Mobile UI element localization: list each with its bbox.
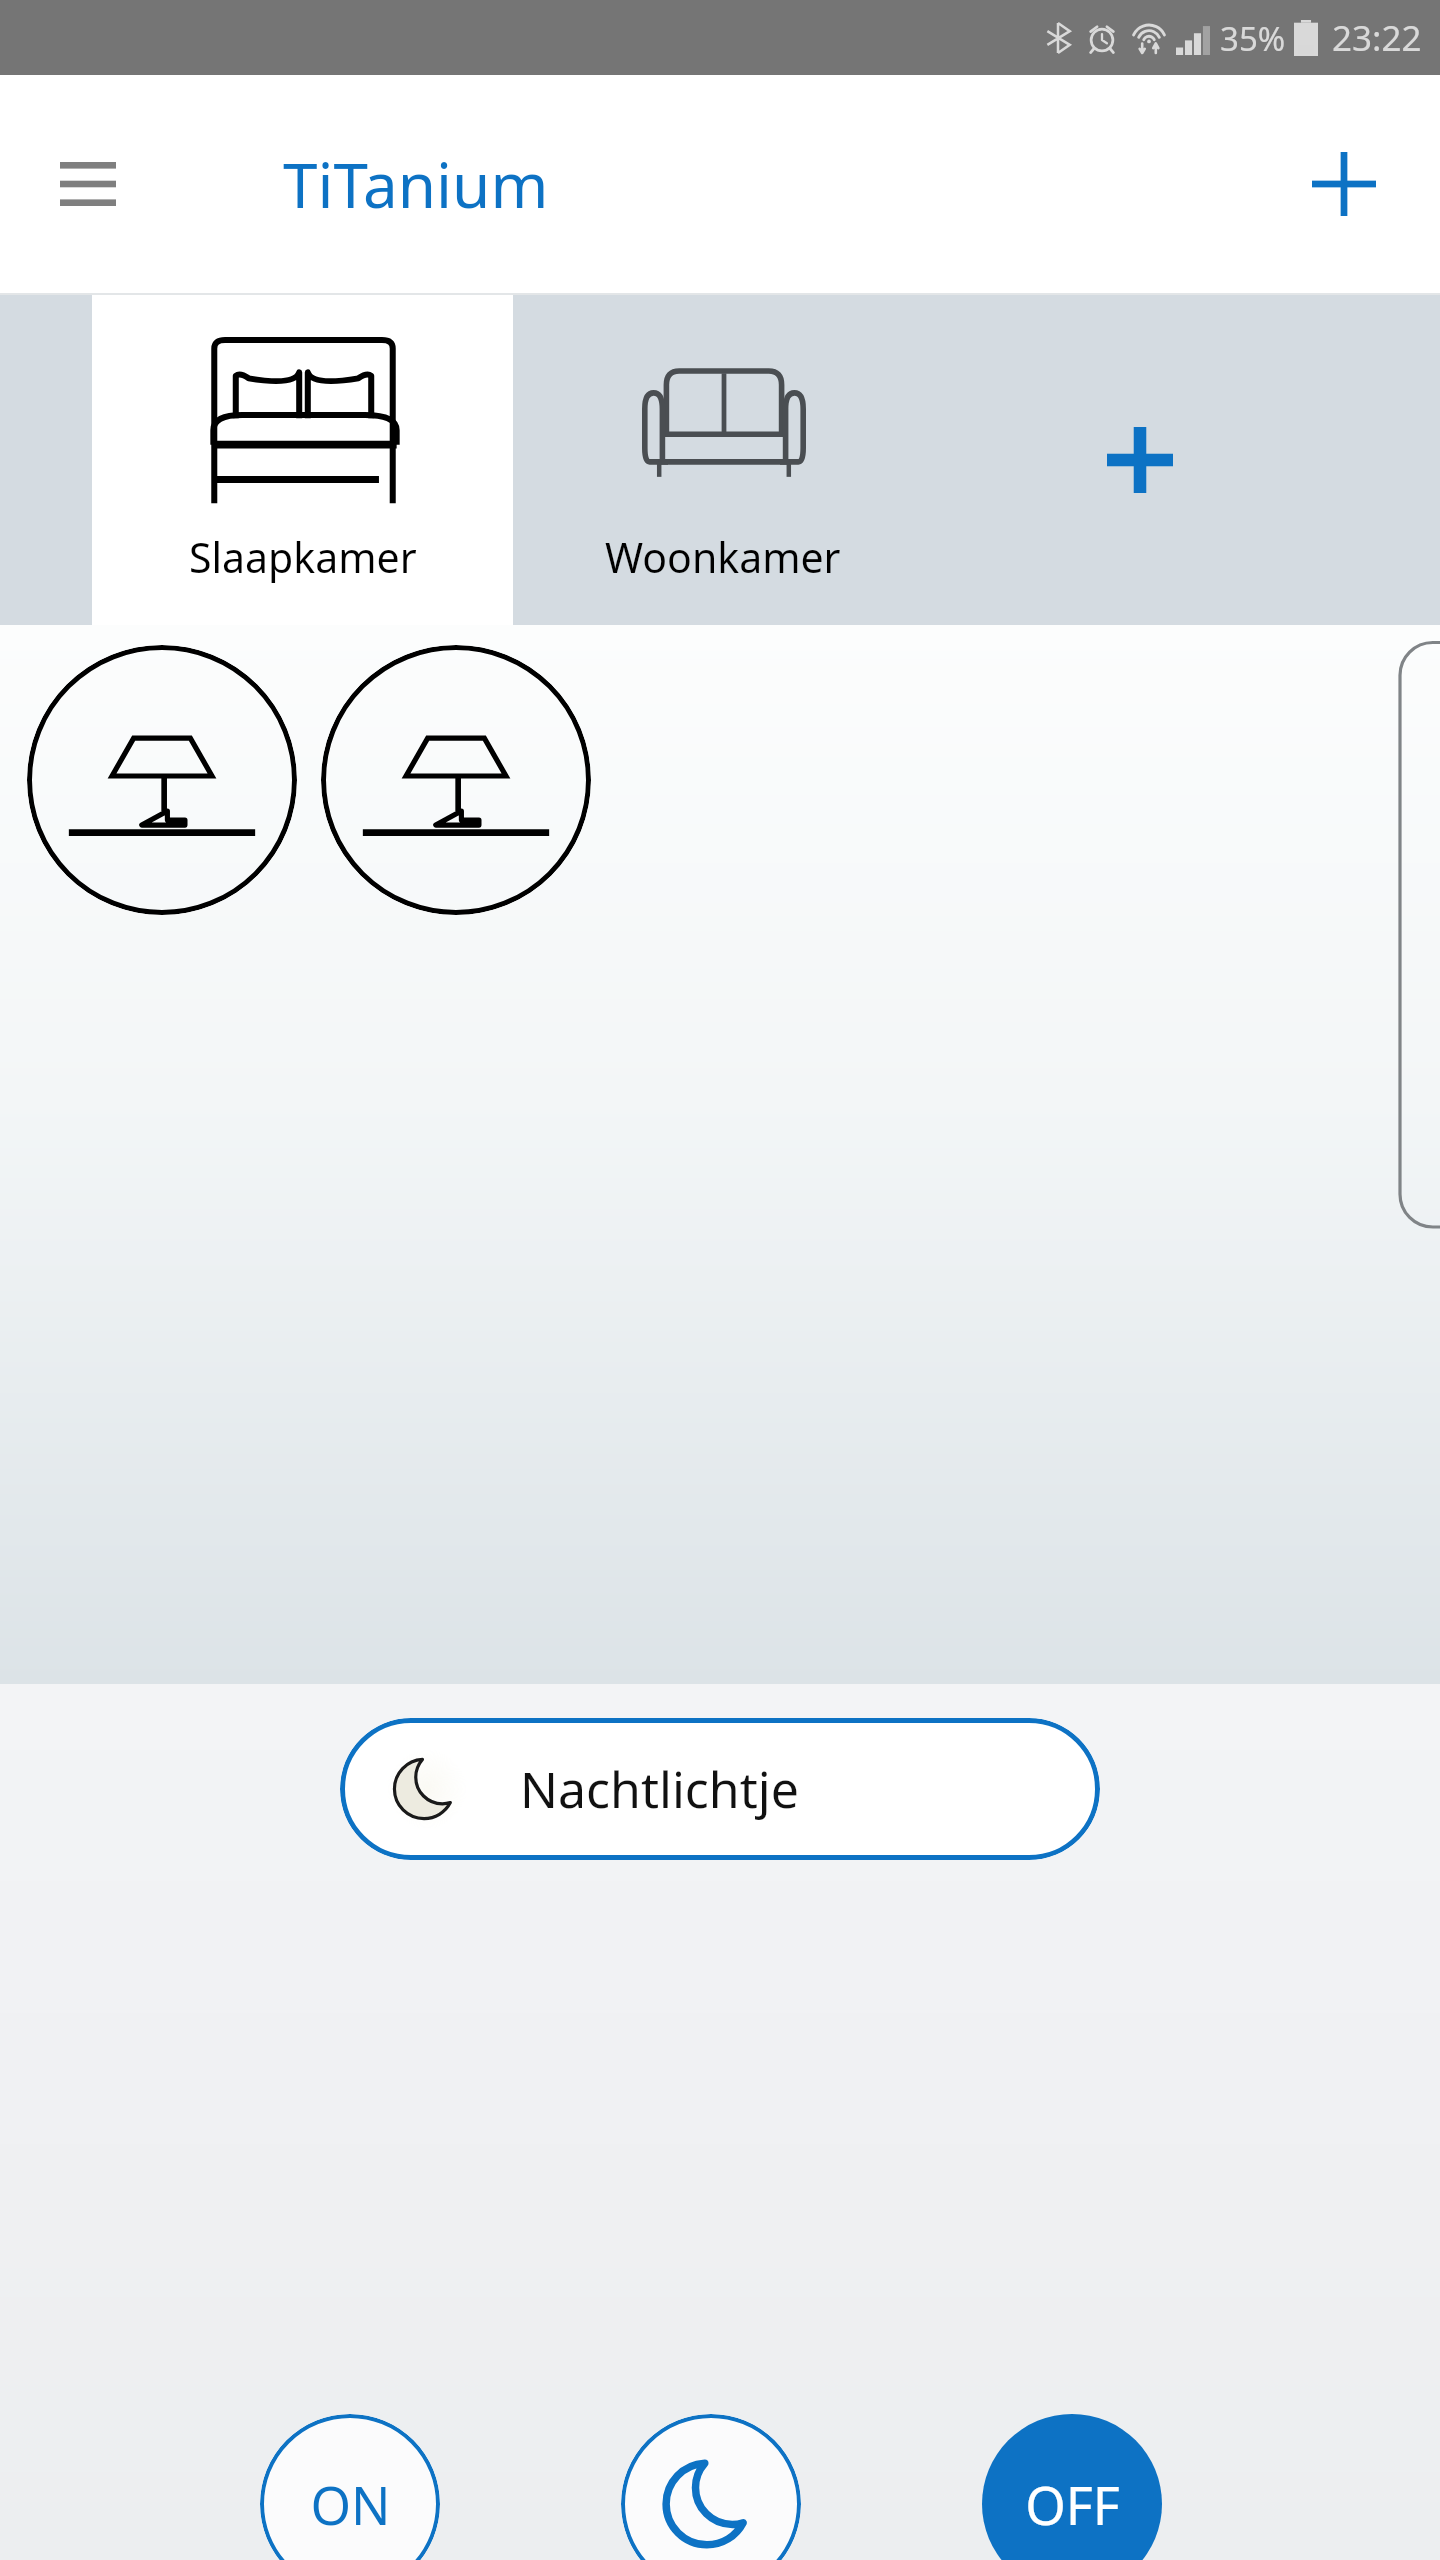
button[interactable]: Lamp — [27, 645, 297, 915]
button[interactable]: OFF — [982, 2414, 1162, 2560]
button[interactable]: Night mode — [621, 2414, 801, 2560]
staticText: Slaapkamer — [189, 529, 417, 585]
button[interactable]: Nachtlichtje — [340, 1718, 1100, 1860]
staticText: Nachtlichtje — [520, 1755, 799, 1823]
button[interactable]: Woonkamer — [513, 295, 933, 625]
button[interactable]: ON — [260, 2414, 440, 2560]
staticText: 23:22 — [1332, 14, 1422, 62]
staticText: Woonkamer — [605, 529, 841, 585]
button[interactable]: Lamp — [321, 645, 591, 915]
button[interactable]: Open navigation menu — [48, 144, 128, 224]
staticText: OFF — [1025, 2469, 1120, 2540]
button[interactable]: Slaapkamer — [92, 295, 513, 625]
staticText: ON — [310, 2469, 391, 2540]
button[interactable]: Add — [1296, 136, 1392, 232]
staticText: 35% — [1220, 16, 1286, 61]
button[interactable]: Add room — [1010, 295, 1270, 625]
staticText: TiTanium — [283, 142, 549, 226]
